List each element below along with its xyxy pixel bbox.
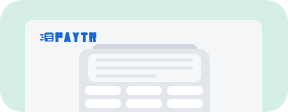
button[interactable]: Payment form loading — [79, 49, 210, 112]
button[interactable]: PayTR logo — [38, 30, 90, 44]
